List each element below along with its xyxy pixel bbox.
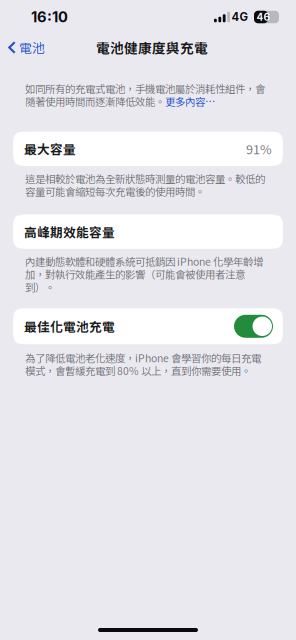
staticText: 16:10: [31, 8, 68, 26]
staticText: 如同所有的充電式電池，手機電池屬於消耗性組件，會隨著使用時間而逐漸降低效能。更多…: [25, 82, 265, 108]
staticText: 高峰期效能容量: [24, 222, 115, 241]
staticText: 46: [256, 11, 269, 23]
staticText: 電池: [19, 38, 45, 57]
staticText: 內建動態軟體和硬體系統可抵銷因 iPhone 化學年齡增加，對執行效能產生的影響…: [25, 255, 263, 293]
staticText: 最佳化電池充電: [24, 317, 115, 335]
button[interactable]: 最佳化電池充電: [13, 308, 283, 344]
staticText: 電池健康度與充電: [96, 38, 208, 57]
staticText: 最大容量: [24, 140, 76, 158]
staticText: 這是相較於電池為全新狀態時測量的電池容量。較低的容量可能會縮短每次充電後的使用時…: [25, 172, 265, 197]
staticText: 為了降低電池老化速度，iPhone 會學習你的每日充電模式，會暫緩充電到 80%…: [25, 351, 261, 377]
staticText: 91%: [246, 140, 272, 158]
button[interactable]: 電池: [0, 35, 53, 60]
staticText: 4G: [231, 10, 248, 24]
